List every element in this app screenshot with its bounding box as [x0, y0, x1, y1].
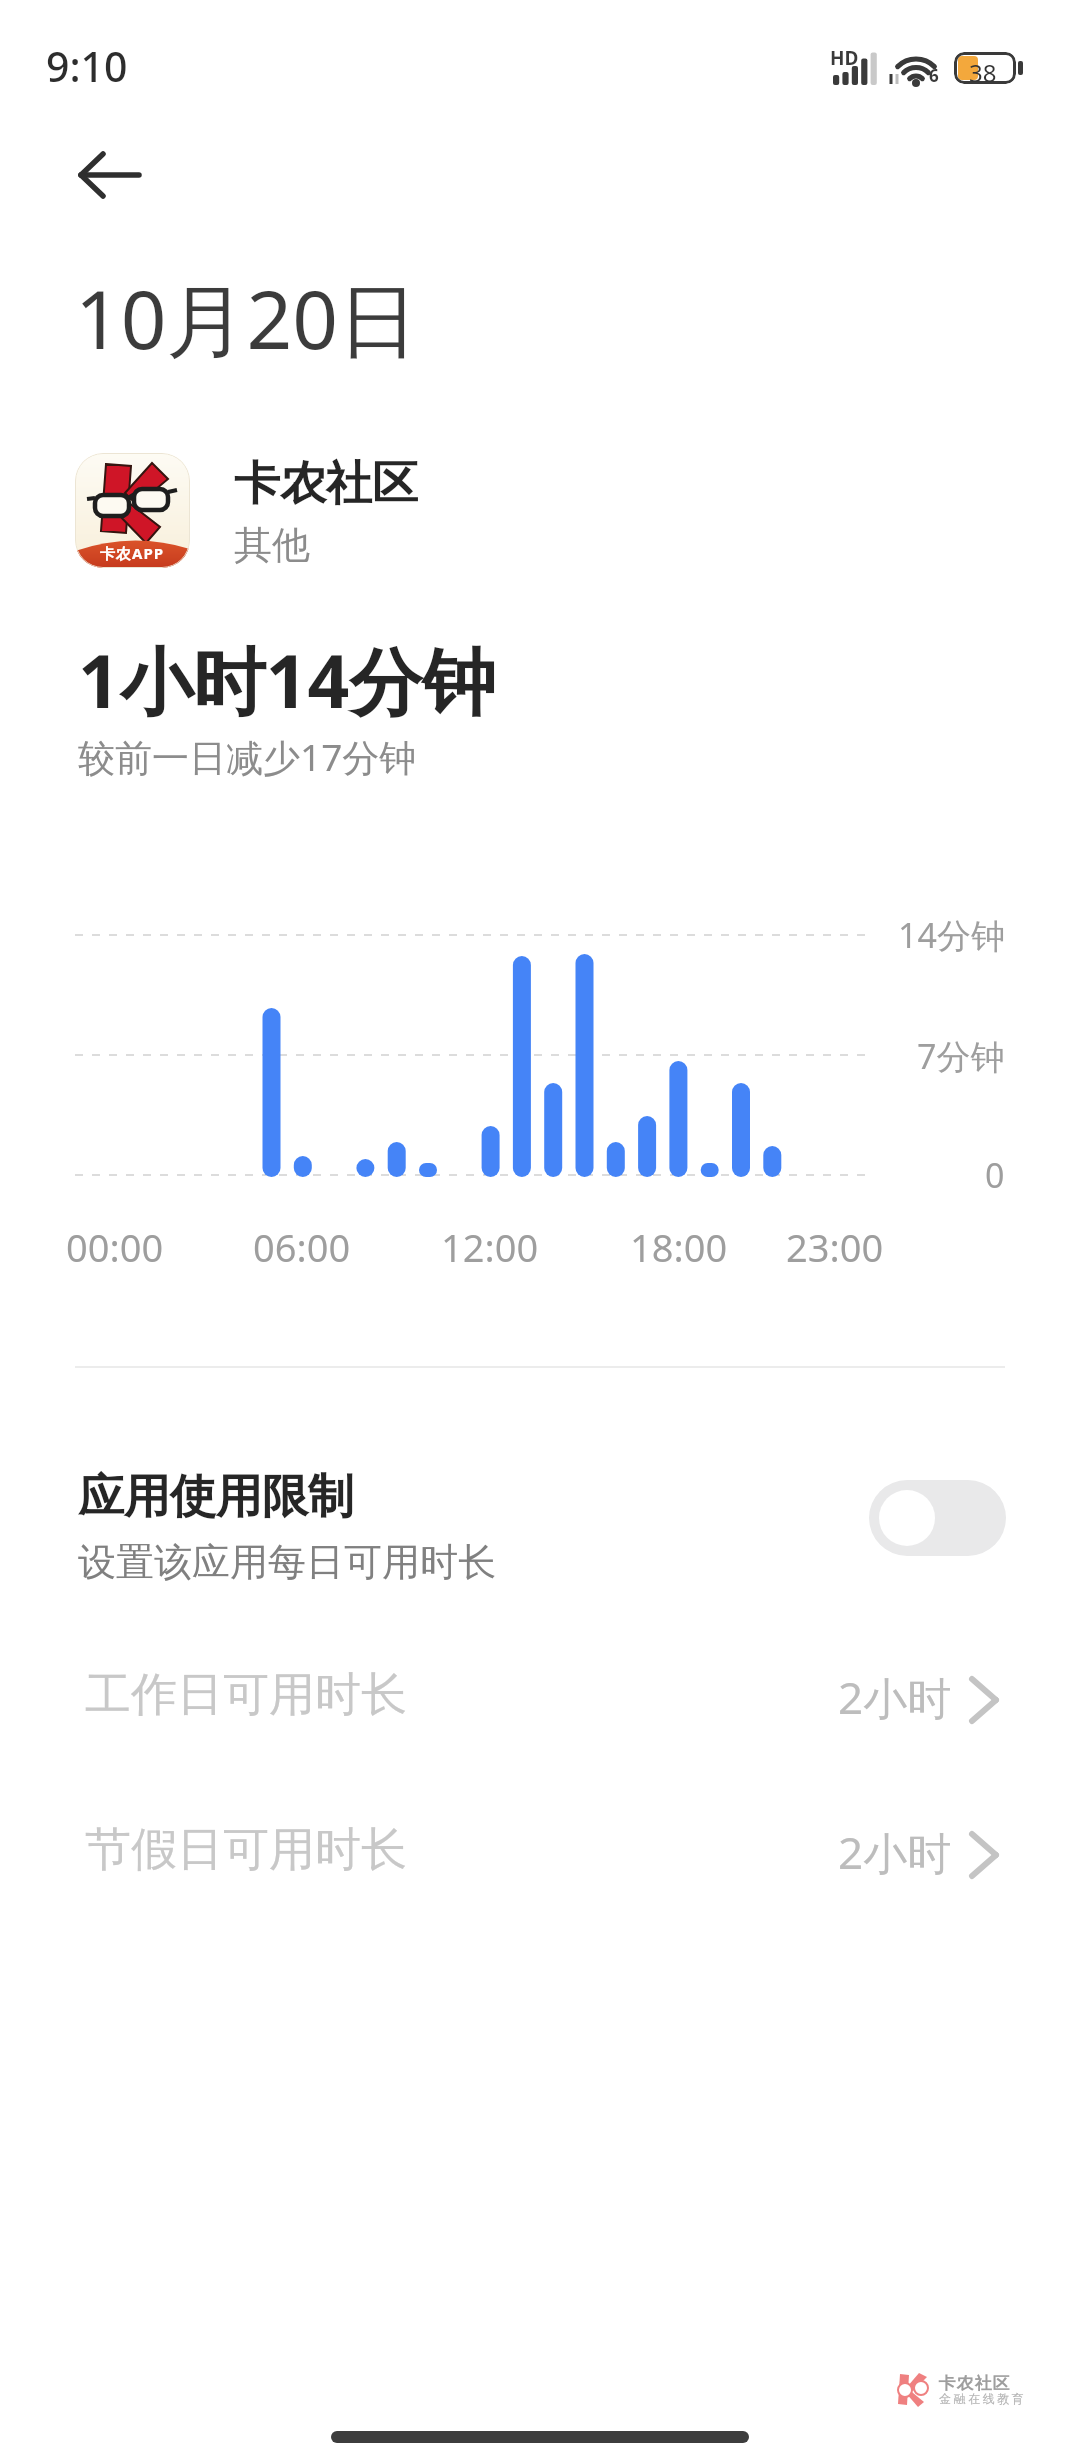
staticText: 18:00	[630, 1221, 728, 1273]
staticText: 设置该应用每日可用时长	[78, 1538, 496, 1586]
button[interactable]	[60, 135, 160, 215]
staticText: 2小时	[838, 1822, 952, 1882]
staticText: 38	[969, 56, 997, 89]
staticText: 2小时	[838, 1667, 952, 1727]
staticText: 12:00	[441, 1221, 539, 1273]
staticText: 金融在线教育	[938, 2391, 1025, 2406]
staticText: 7分钟	[917, 1033, 1005, 1079]
staticText: HD	[830, 45, 859, 71]
staticText: 6	[929, 64, 939, 87]
button[interactable]	[0, 1638, 1080, 1762]
staticText: 06:00	[253, 1221, 351, 1273]
staticText: 工作日可用时长	[85, 1666, 407, 1724]
staticText: 0	[985, 1152, 1005, 1198]
staticText: 14分钟	[898, 912, 1005, 958]
staticText: 应用使用限制	[78, 1468, 354, 1526]
staticText: 节假日可用时长	[85, 1821, 407, 1879]
staticText: 卡农社区	[234, 455, 418, 513]
button[interactable]	[869, 1480, 1006, 1556]
staticText: 较前一日减少17分钟	[78, 731, 417, 782]
staticText: 1小时14分钟	[78, 630, 496, 730]
staticText: 23:00	[786, 1221, 884, 1273]
button[interactable]	[0, 1793, 1080, 1917]
staticText: 卡农APP	[100, 543, 165, 563]
button[interactable]	[0, 440, 1080, 585]
staticText: 00:00	[66, 1221, 164, 1273]
staticText: 9:10	[46, 38, 128, 94]
staticText: 10月20日	[75, 263, 419, 372]
staticText: 其他	[234, 521, 310, 569]
staticText: 卡农社区	[938, 2373, 1010, 2394]
